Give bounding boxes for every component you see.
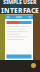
button[interactable] <box>19 21 31 24</box>
button[interactable] <box>5 54 33 58</box>
staticText: INTERFACE <box>1 6 39 15</box>
staticText: SIMPLE USER <box>3 0 37 5</box>
button[interactable] <box>6 21 19 24</box>
